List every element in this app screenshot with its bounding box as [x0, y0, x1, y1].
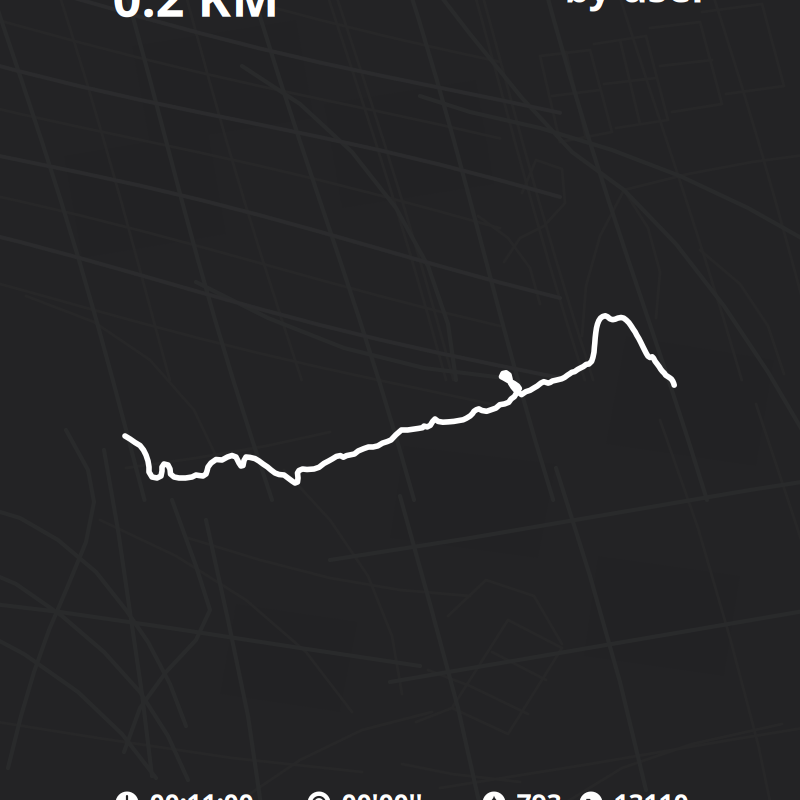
button[interactable]: Duration 00:11:00: [115, 785, 253, 800]
staticText: 13110: [613, 785, 688, 800]
staticText: 00'00'': [341, 785, 422, 800]
button[interactable]: Steps 13110: [579, 785, 688, 800]
staticText: 0.2 KM: [112, 0, 279, 31]
button[interactable]: Pace 00'00'': [307, 785, 422, 800]
button[interactable]: Calories 793: [482, 785, 561, 800]
staticText: 00:11:00: [149, 785, 253, 800]
staticText: 793: [516, 785, 561, 800]
staticText: by user: [564, 0, 709, 13]
